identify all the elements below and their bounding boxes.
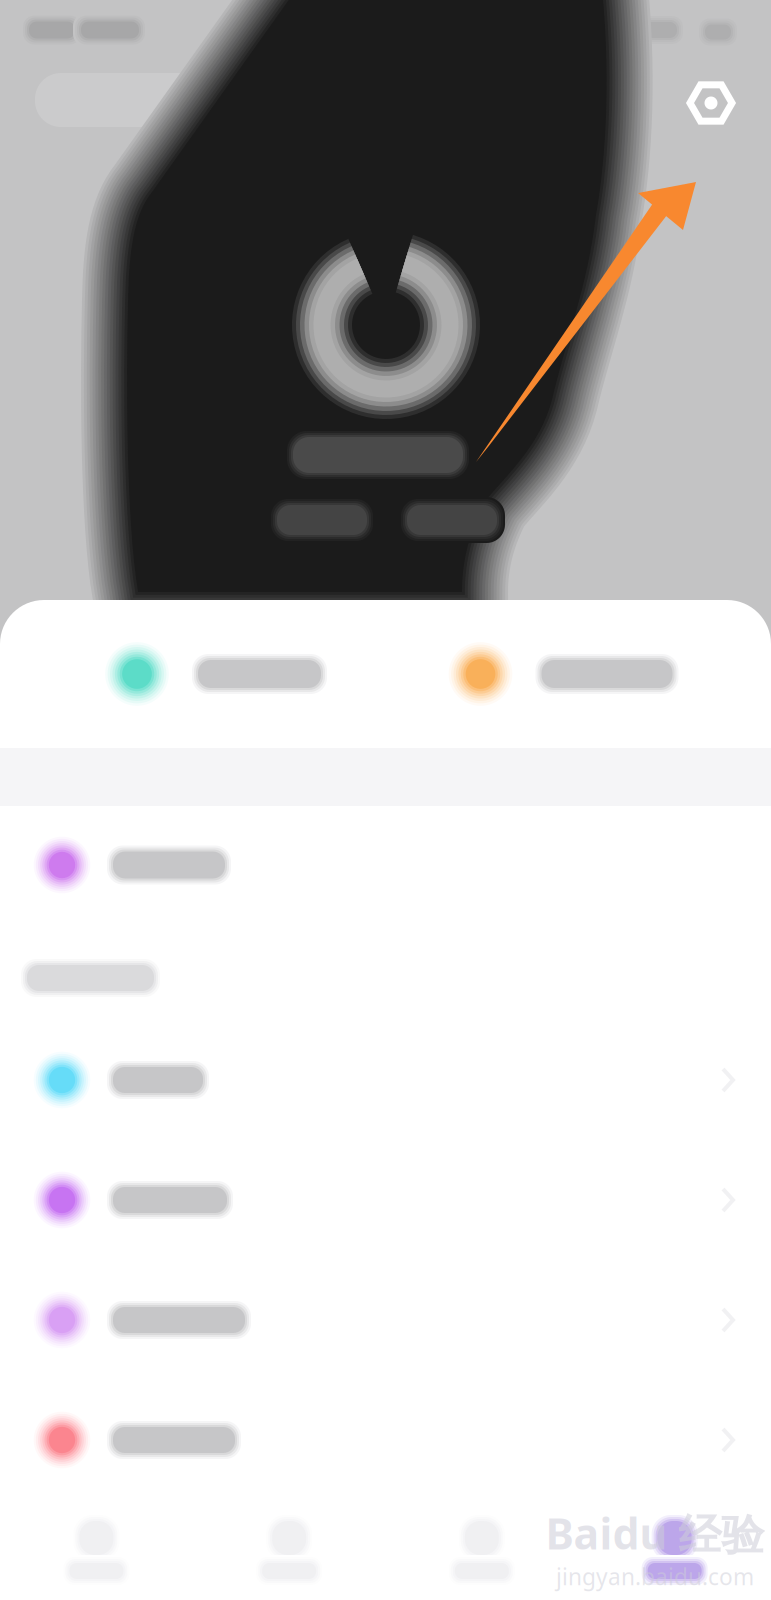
- button[interactable]: [0, 1260, 771, 1380]
- button[interactable]: Cart: [385, 1500, 578, 1600]
- button[interactable]: [385, 600, 771, 748]
- button[interactable]: [0, 1140, 771, 1260]
- button[interactable]: Discover: [193, 1500, 386, 1600]
- button[interactable]: Home: [0, 1500, 193, 1600]
- staticText: jingyan.baidu.com: [556, 1561, 754, 1591]
- button[interactable]: [0, 806, 771, 924]
- button[interactable]: [0, 1020, 771, 1140]
- staticText: Baidu 经验: [545, 1504, 764, 1561]
- button[interactable]: [0, 600, 385, 748]
- button[interactable]: Me: [578, 1500, 771, 1600]
- button[interactable]: [0, 1380, 771, 1500]
